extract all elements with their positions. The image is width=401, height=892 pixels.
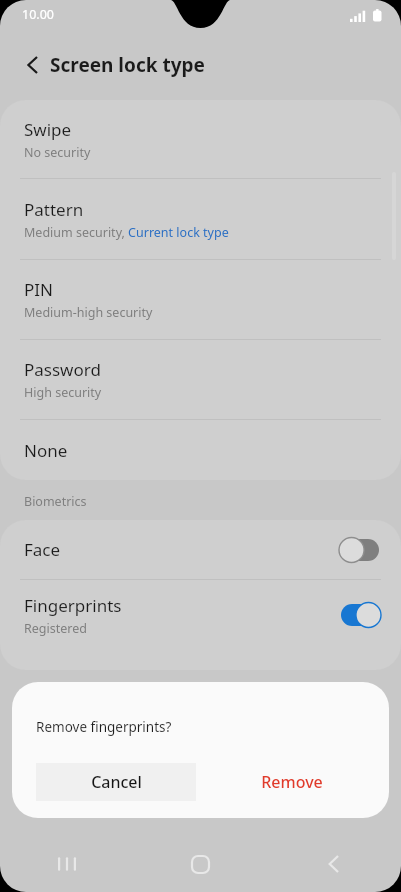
button[interactable]: Remove — [217, 763, 367, 801]
button[interactable]: Fingerprints — [0, 580, 401, 650]
staticText: Swipe — [24, 118, 72, 141]
button[interactable]: Swipe — [0, 100, 401, 178]
staticText: Face — [24, 538, 61, 561]
staticText: Biometrics — [24, 493, 87, 510]
staticText: Remove fingerprints? — [36, 718, 172, 736]
button[interactable]: Back — [267, 836, 401, 892]
button[interactable]: Fingerprints toggle — [339, 600, 383, 630]
button[interactable]: None — [0, 420, 401, 480]
staticText: Pattern — [24, 198, 84, 221]
button[interactable]: Cancel — [36, 763, 196, 801]
staticText: High security — [24, 384, 102, 401]
staticText: PIN — [24, 278, 53, 301]
button[interactable]: PIN — [0, 260, 401, 339]
staticText: Screen lock type — [50, 52, 205, 78]
staticText: No security — [24, 144, 91, 161]
staticText: Remove — [261, 771, 323, 793]
staticText: Registered — [24, 620, 87, 637]
button[interactable]: Back — [9, 41, 57, 89]
staticText: None — [24, 439, 68, 462]
button[interactable]: Face — [0, 520, 401, 579]
staticText: 10.00 — [22, 6, 54, 23]
button[interactable]: Face toggle — [339, 535, 383, 565]
staticText: Cancel — [91, 771, 142, 793]
button[interactable]: Recents — [0, 836, 133, 892]
staticText: Fingerprints — [24, 594, 122, 617]
button[interactable]: Password — [0, 340, 401, 419]
staticText: Medium security, Current lock type — [24, 224, 229, 241]
button[interactable]: Home — [133, 836, 267, 892]
staticText: Medium-high security — [24, 304, 153, 321]
button[interactable]: Pattern — [0, 179, 401, 259]
staticText: Password — [24, 358, 101, 381]
